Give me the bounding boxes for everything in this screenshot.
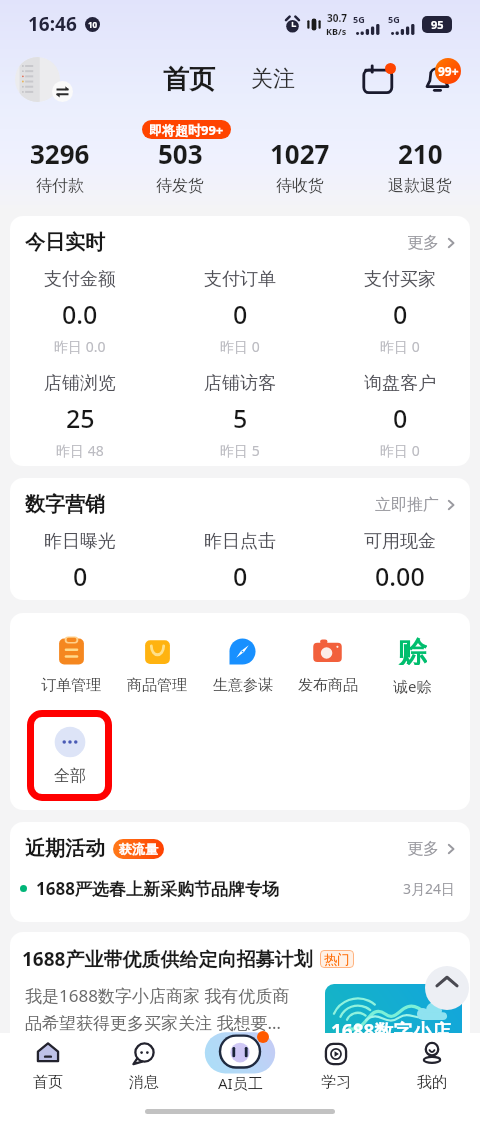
staticText: 立即推广 [375,495,439,515]
staticText: 支付订单 [204,268,276,291]
staticText: 店铺浏览 [44,372,116,395]
button[interactable]: 支付订单 [160,268,320,356]
staticText: 1688数字小店 [331,1018,451,1044]
staticText: 3296 [30,136,90,171]
staticText: 可用现金 [364,530,436,553]
staticText: 0 [233,559,248,593]
button[interactable]: 店铺访客 [160,372,320,460]
staticText: 0 [393,297,408,331]
button[interactable]: 发布商品 [285,636,370,695]
button[interactable]: 询盘客户 [320,372,480,460]
staticText: 获流量 [119,841,158,857]
button[interactable]: 商品管理 [114,636,200,695]
button[interactable]: 210 [360,136,480,196]
button[interactable]: 昨日曝光 [0,530,160,593]
staticText: 5 [233,401,248,435]
button[interactable]: 关注 [245,65,301,93]
staticText: 16:46 [28,11,77,37]
staticText: 首页 [33,1073,63,1092]
button[interactable]: 学习 [288,1042,384,1092]
button[interactable]: AI员工 [192,1042,288,1093]
staticText: 我是1688数字小店商家 我有优质商品希望获得更多买家关注 我想要… [25,984,297,1034]
staticText: 1688严选春上新采购节品牌专场 [36,877,279,900]
staticText: 0.00 [375,559,425,593]
staticText: 30.7 [327,11,347,25]
button[interactable]: 我的 [384,1042,480,1092]
button[interactable]: 503 [120,136,240,196]
staticText: 0 [233,297,248,331]
staticText: 昨日点击 [204,530,276,553]
staticText: 近期活动 [25,836,105,861]
staticText: 我的 [417,1073,447,1092]
staticText: 0 [73,559,88,593]
button[interactable]: 1688严选春上新采购节品牌专场 [0,877,480,900]
staticText: 诚e赊 [393,676,432,696]
staticText: 昨日曝光 [44,530,116,553]
button[interactable]: 3296 [0,136,120,196]
button[interactable]: 更多 [407,839,458,859]
button[interactable]: Calendar [359,59,399,99]
staticText: 昨日 0 [380,337,420,356]
staticText: 店铺访客 [204,372,276,395]
staticText: 待发货 [156,176,204,196]
button[interactable]: 订单管理 [28,636,114,695]
button[interactable]: Account [15,56,73,102]
staticText: 1027 [270,136,330,171]
staticText: 5G [388,13,400,25]
staticText: 询盘客户 [364,372,436,395]
button[interactable]: 昨日点击 [160,530,320,593]
staticText: 更多 [407,233,439,253]
button[interactable]: 赊 [370,636,455,696]
staticText: 待收货 [276,176,324,196]
staticText: 退款退货 [388,176,452,196]
button[interactable]: 全部 [27,726,112,786]
button[interactable]: 1027 [240,136,360,196]
staticText: 昨日 0 [220,337,260,356]
staticText: 首页 [163,63,215,96]
staticText: 支付买家 [364,268,436,291]
staticText: 消息 [129,1073,159,1092]
staticText: 25 [66,401,95,435]
staticText: 赊 [398,634,427,665]
button[interactable]: 支付金额 [0,268,160,356]
button[interactable]: Notifications [419,58,461,100]
button[interactable]: 立即推广 [375,495,458,515]
button[interactable]: 首页 [157,63,221,96]
staticText: 支付金额 [44,268,116,291]
staticText: 发布商品 [298,676,358,695]
staticText: 昨日 48 [56,441,104,460]
staticText: 数字营销 [25,492,105,517]
staticText: 订单管理 [41,676,101,695]
staticText: 今日实时 [25,230,105,255]
button[interactable]: 更多 [407,233,458,253]
staticText: 95 [431,17,444,32]
staticText: 全部 [54,766,86,786]
staticText: 1688产业带优质供给定向招募计划 [22,946,313,972]
staticText: 503 [158,136,203,171]
staticText: 210 [398,136,443,171]
staticText: 商品管理 [127,676,187,695]
staticText: 学习 [321,1073,351,1092]
staticText: 5G [353,13,365,25]
staticText: 即将超时99+ [149,121,224,139]
button[interactable]: 生意参谋 [200,636,285,695]
staticText: 昨日 0 [380,441,420,460]
staticText: 0.0 [62,297,98,331]
staticText: 10 [88,19,98,30]
staticText: 99+ [438,63,459,79]
button[interactable]: 店铺浏览 [0,372,160,460]
staticText: AI员工 [218,1073,263,1093]
staticText: 昨日 5 [220,441,260,460]
button[interactable]: 支付买家 [320,268,480,356]
staticText: 热门 [324,951,350,967]
staticText: 0 [393,401,408,435]
button[interactable]: Scroll to top [425,966,469,1010]
button[interactable]: 首页 [0,1042,96,1092]
button[interactable]: 消息 [96,1042,192,1092]
button[interactable]: 可用现金 [320,530,480,593]
staticText: 昨日 0.0 [54,337,106,356]
staticText: 关注 [251,65,295,93]
staticText: 生意参谋 [213,676,273,695]
staticText: KB/s [326,25,347,37]
staticText: 更多 [407,839,439,859]
